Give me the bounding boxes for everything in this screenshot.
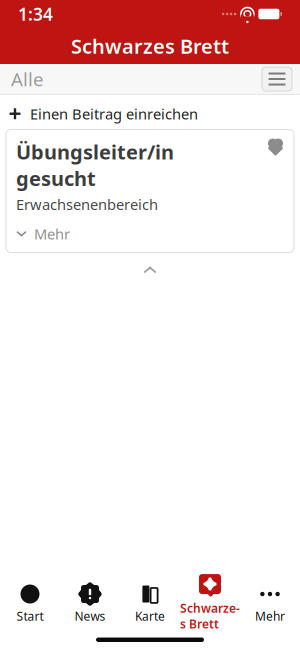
staticText: Erwachsenenbereich: [16, 195, 158, 214]
staticText: Einen Beitrag einreichen: [30, 104, 198, 123]
button[interactable]: News: [60, 575, 120, 628]
staticText: News: [74, 608, 105, 624]
button[interactable]: Start: [0, 575, 60, 628]
staticText: Schwarzes Brett: [71, 33, 229, 59]
staticText: Mehr: [255, 608, 285, 624]
staticText: Karte: [135, 608, 165, 624]
button[interactable]: Einen Beitrag einreichen: [0, 95, 300, 129]
button[interactable]: Filter: [262, 67, 300, 91]
staticText: Start: [16, 608, 43, 624]
staticText: Alle: [11, 67, 44, 91]
button[interactable]: Schwarzes Brett: [180, 567, 240, 636]
staticText: Übungsleiter/in gesucht: [16, 138, 174, 192]
button[interactable]: Nach oben: [0, 253, 300, 282]
button[interactable]: Mehr: [240, 575, 300, 628]
button[interactable]: Alle: [0, 64, 131, 94]
button[interactable]: Mehr: [6, 214, 294, 253]
button[interactable]: Favorit: [259, 138, 284, 154]
staticText: Mehr: [34, 224, 70, 244]
staticText: 1:34: [18, 2, 53, 25]
button[interactable]: Karte: [120, 575, 180, 628]
staticText: Schwarzes Brett: [180, 600, 240, 632]
